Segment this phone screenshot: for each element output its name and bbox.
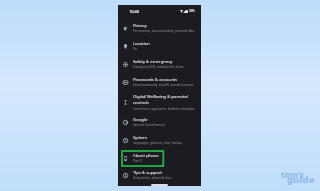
- staticText: Pixel 3: [133, 159, 143, 163]
- staticText: Languages, gestures, time, backup: [133, 141, 183, 145]
- staticText: System: [133, 134, 148, 140]
- staticText: Google: [133, 116, 148, 122]
- staticText: Emergency SOS, medical info, alerts: [133, 65, 184, 69]
- staticText: Location: [133, 40, 150, 46]
- button[interactable]: System: [122, 133, 200, 148]
- staticText: Services & preferences: [133, 123, 165, 127]
- button[interactable]: Safety & emergency: [122, 57, 200, 72]
- button[interactable]: Google: [122, 115, 200, 130]
- button[interactable]: Location: [122, 39, 200, 54]
- staticText: Digital Wellbeing & parental controls: [133, 93, 188, 105]
- staticText: Passwords & accounts: [133, 76, 178, 82]
- staticText: Permissions, account activity, personal …: [133, 29, 195, 33]
- button[interactable]: About phone: [122, 151, 200, 166]
- staticText: 92%: [189, 9, 195, 13]
- staticText: tom's: [281, 169, 304, 180]
- staticText: Help articles, phone & chat: [133, 176, 171, 180]
- staticText: Safety & emergency: [133, 58, 173, 64]
- staticText: About phone: [133, 152, 159, 158]
- staticText: Privacy: [133, 22, 147, 28]
- staticText: 10:48: [129, 9, 139, 14]
- staticText: On: [133, 47, 138, 51]
- staticText: Saved passwords, autofill, synced accoun…: [133, 83, 194, 87]
- button[interactable]: Privacy: [122, 21, 200, 36]
- staticText: guide: [287, 173, 315, 186]
- button[interactable]: Passwords & accounts: [122, 75, 200, 90]
- staticText: Screen time, app timers, bedtime schedul…: [133, 107, 195, 111]
- staticText: Tips & support: [133, 169, 162, 175]
- button[interactable]: Tips & support: [122, 168, 200, 183]
- button[interactable]: Digital Wellbeing & parental controls: [122, 92, 200, 113]
